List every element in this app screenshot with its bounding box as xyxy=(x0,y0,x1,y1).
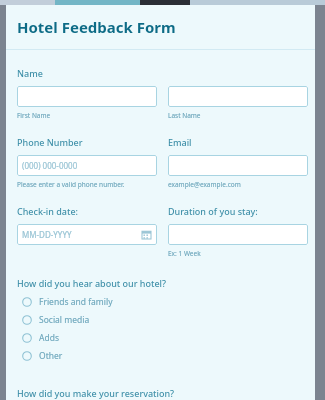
staticText: Name xyxy=(17,67,43,79)
button[interactable] xyxy=(168,155,308,176)
staticText: (000) 000-0000 xyxy=(22,160,78,171)
staticText: Please enter a valid phone number. xyxy=(17,180,125,189)
staticText: How did you make your reservation? xyxy=(17,387,175,399)
staticText: Adds xyxy=(39,332,59,344)
button[interactable]: Pick date xyxy=(141,229,152,240)
button[interactable] xyxy=(168,86,308,107)
button[interactable]: (000) 000-0000 xyxy=(17,155,157,176)
button[interactable]: Adds xyxy=(17,329,313,347)
staticText: How did you hear about our hotel? xyxy=(17,277,167,289)
button[interactable]: Friends and family xyxy=(17,293,313,311)
button[interactable]: Other xyxy=(17,347,313,365)
button[interactable]: MM-DD-YYYY xyxy=(17,224,157,245)
staticText: First Name xyxy=(17,111,51,120)
staticText: Friends and family xyxy=(39,296,113,308)
staticText: Phone Number xyxy=(17,136,83,148)
staticText: Other xyxy=(39,350,63,362)
staticText: Hotel Feedback Form xyxy=(17,17,176,37)
staticText: Check-in date: xyxy=(17,205,79,217)
staticText: Last Name xyxy=(168,111,201,120)
button[interactable]: Social media xyxy=(17,311,313,329)
staticText: Duration of you stay: xyxy=(168,205,258,217)
staticText: Email xyxy=(168,136,192,148)
staticText: MM-DD-YYYY xyxy=(22,229,72,240)
button[interactable] xyxy=(168,224,308,245)
staticText: example@example.com xyxy=(168,180,241,189)
staticText: Ex: 1 Week xyxy=(168,249,201,258)
staticText: Social media xyxy=(39,314,90,326)
button[interactable] xyxy=(17,86,157,107)
